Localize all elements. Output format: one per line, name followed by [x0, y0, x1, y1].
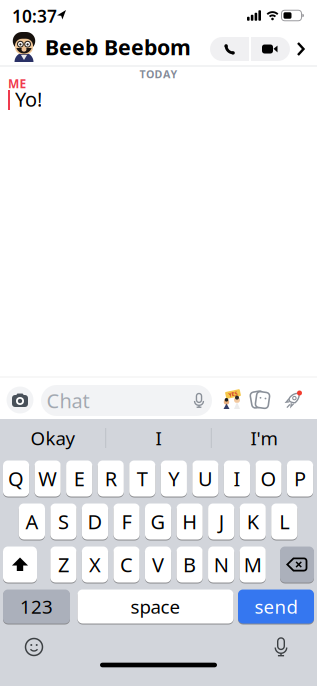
- staticText: K: [247, 508, 259, 535]
- button[interactable]: I'm: [214, 423, 314, 453]
- staticText: U: [198, 465, 213, 492]
- button[interactable]: D: [82, 503, 108, 540]
- button[interactable]: N: [208, 546, 234, 583]
- staticText: Z: [58, 551, 69, 578]
- button[interactable]: K: [240, 503, 266, 540]
- staticText: A: [25, 508, 38, 535]
- button[interactable]: U: [192, 460, 218, 497]
- button[interactable]: Delete: [280, 546, 314, 583]
- button[interactable]: send: [238, 589, 314, 624]
- staticText: X: [89, 551, 101, 578]
- button[interactable]: Chat: [41, 385, 212, 416]
- button[interactable]: Profile: [11, 31, 37, 65]
- button[interactable]: E: [66, 460, 92, 497]
- staticText: Chat: [46, 387, 89, 414]
- button[interactable]: C: [113, 546, 140, 583]
- staticText: P: [294, 465, 306, 492]
- button[interactable]: Video call: [251, 37, 289, 61]
- button[interactable]: X: [82, 546, 108, 583]
- button[interactable]: Shift: [3, 546, 37, 583]
- staticText: ME: [8, 75, 26, 91]
- staticText: G: [151, 508, 166, 535]
- button[interactable]: M: [240, 546, 266, 583]
- button[interactable]: V: [145, 546, 171, 583]
- staticText: S: [58, 508, 69, 535]
- staticText: space: [130, 594, 180, 619]
- staticText: C: [120, 551, 133, 578]
- staticText: B: [183, 551, 196, 578]
- staticText: D: [87, 508, 102, 535]
- button[interactable]: F: [113, 503, 140, 540]
- staticText: R: [105, 465, 117, 492]
- staticText: Beeb Beebom: [45, 33, 191, 61]
- staticText: Yo!: [15, 86, 42, 112]
- button[interactable]: L: [271, 503, 297, 540]
- button[interactable]: B: [176, 546, 203, 583]
- staticText: I: [233, 465, 240, 492]
- staticText: 10:37: [12, 4, 57, 27]
- button[interactable]: Y: [161, 460, 187, 497]
- button[interactable]: Okay: [3, 423, 103, 453]
- button[interactable]: space: [77, 589, 233, 624]
- button[interactable]: Z: [50, 546, 76, 583]
- button[interactable]: More: [291, 37, 311, 61]
- button[interactable]: Stickers: [220, 389, 242, 409]
- button[interactable]: Camera: [6, 386, 33, 413]
- staticText: I: [155, 426, 161, 450]
- button[interactable]: Q: [3, 460, 29, 497]
- button[interactable]: O: [255, 460, 282, 497]
- staticText: H: [182, 508, 197, 535]
- staticText: W: [38, 465, 57, 492]
- staticText: 123: [20, 594, 53, 619]
- staticText: E: [74, 465, 85, 492]
- staticText: T: [137, 465, 148, 492]
- button[interactable]: H: [177, 503, 203, 540]
- button[interactable]: P: [287, 460, 313, 497]
- button[interactable]: W: [34, 460, 61, 497]
- staticText: L: [279, 508, 289, 535]
- button[interactable]: A: [19, 503, 45, 540]
- button[interactable]: Dictation: [273, 638, 289, 656]
- button[interactable]: T: [129, 460, 155, 497]
- button[interactable]: Voice call: [211, 37, 249, 61]
- staticText: send: [254, 594, 297, 619]
- staticText: M: [244, 551, 262, 578]
- button[interactable]: G: [145, 503, 171, 540]
- staticText: YES: [228, 390, 237, 398]
- staticText: Okay: [30, 426, 75, 450]
- button[interactable]: Memories: [249, 389, 270, 410]
- staticText: J: [219, 508, 224, 535]
- staticText: V: [152, 551, 164, 578]
- button[interactable]: I: [108, 423, 208, 453]
- staticText: F: [121, 508, 131, 535]
- button[interactable]: R: [98, 460, 124, 497]
- staticText: N: [214, 551, 229, 578]
- staticText: Q: [8, 465, 24, 492]
- staticText: Y: [168, 465, 179, 492]
- button[interactable]: I: [224, 460, 250, 497]
- button[interactable]: S: [50, 503, 77, 540]
- staticText: O: [260, 465, 276, 492]
- button[interactable]: 123: [3, 589, 70, 624]
- button[interactable]: J: [208, 503, 234, 540]
- staticText: TODAY: [139, 67, 177, 81]
- button[interactable]: Emoji: [25, 638, 42, 655]
- button[interactable]: Games: [283, 391, 301, 408]
- staticText: I'm: [250, 426, 277, 450]
